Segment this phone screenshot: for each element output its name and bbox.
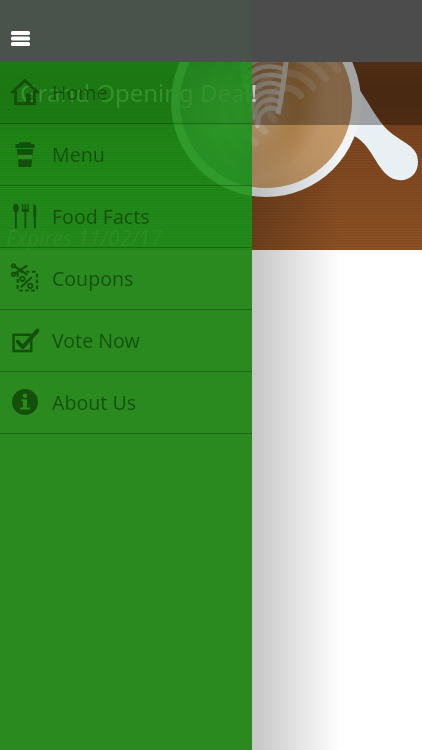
- staticText: Vote Now: [52, 327, 140, 354]
- staticText: Expires 11/02/17: [6, 224, 162, 253]
- button[interactable]: Food Facts: [0, 186, 252, 247]
- button[interactable]: Coupons: [0, 248, 252, 309]
- staticText: Home: [52, 79, 108, 106]
- staticText: Food Facts: [52, 203, 150, 230]
- staticText: Grand Opening Deal!: [20, 76, 258, 109]
- button[interactable]: Open navigation drawer: [0, 0, 252, 62]
- staticText: About Us: [52, 389, 137, 416]
- staticText: Grand Opening Deal!: [20, 76, 258, 109]
- staticText: Menu: [52, 141, 105, 168]
- button[interactable]: About Us: [0, 372, 252, 433]
- button[interactable]: Vote Now: [0, 310, 252, 371]
- button[interactable]: Menu: [0, 124, 252, 185]
- staticText: Expires 11/02/17: [6, 224, 162, 253]
- other: Open navigation drawer: [11, 31, 30, 46]
- button[interactable]: Home: [0, 62, 252, 123]
- staticText: Coupons: [52, 265, 134, 292]
